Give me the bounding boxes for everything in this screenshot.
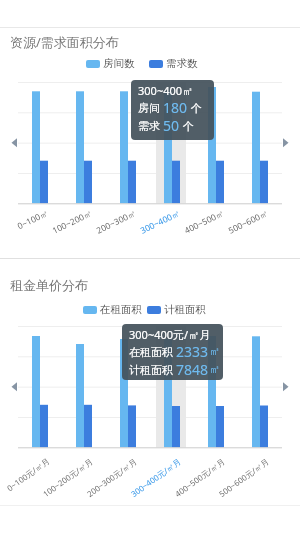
staticText: 需求数 xyxy=(166,57,198,70)
button[interactable] xyxy=(6,134,22,152)
staticText: 300~400元/㎡月 xyxy=(128,455,183,499)
staticText: 房间数 xyxy=(103,57,135,70)
staticText: 计租面积 xyxy=(129,362,176,377)
staticText: 资源/需求面积分布 xyxy=(10,33,119,51)
staticText: 300~400㎡ xyxy=(138,207,182,236)
staticText: ㎡ xyxy=(209,362,220,376)
staticText: 个 xyxy=(180,118,194,133)
button[interactable] xyxy=(278,134,294,152)
staticText: 0~100元/㎡月 xyxy=(4,455,51,493)
staticText: 100~200元/㎡月 xyxy=(40,455,95,499)
staticText: 500~600㎡ xyxy=(226,207,270,236)
staticText: 100~200㎡ xyxy=(50,207,94,236)
staticText: 50 xyxy=(163,116,180,134)
staticText: 个 xyxy=(188,100,202,115)
button[interactable] xyxy=(6,378,22,396)
staticText: ㎡ xyxy=(209,344,220,358)
button[interactable] xyxy=(278,378,294,396)
staticText: 在租面积 xyxy=(129,344,176,359)
staticText: 300~400元/㎡月 xyxy=(129,327,211,342)
staticText: 7848 xyxy=(176,360,209,378)
staticText: 180 xyxy=(163,98,188,116)
staticText: 200~300㎡ xyxy=(94,207,138,236)
staticText: 300~400㎡ xyxy=(138,83,194,98)
staticText: 计租面积 xyxy=(164,303,206,316)
staticText: 500~600元/㎡月 xyxy=(216,455,271,499)
staticText: 需求 xyxy=(138,118,163,133)
staticText: 在租面积 xyxy=(100,303,142,316)
staticText: 200~300元/㎡月 xyxy=(84,455,139,499)
staticText: 0~100㎡ xyxy=(15,207,50,231)
button[interactable]: 房间数 xyxy=(86,57,198,70)
staticText: 400~500㎡ xyxy=(182,207,226,236)
staticText: 400~500元/㎡月 xyxy=(172,455,227,499)
staticText: 2333 xyxy=(176,342,209,360)
button[interactable]: 在租面积 xyxy=(83,303,206,316)
staticText: 房间 xyxy=(138,100,163,115)
staticText: 租金单价分布 xyxy=(10,277,88,293)
